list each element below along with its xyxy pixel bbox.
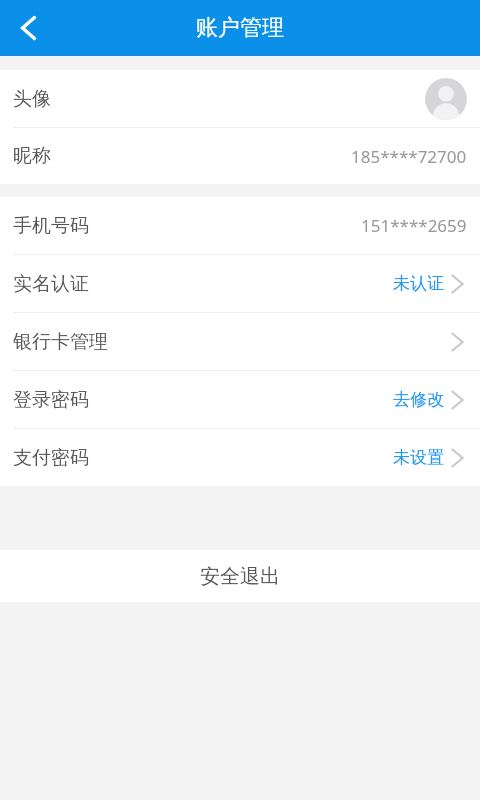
staticText: 151****2659 <box>361 214 467 237</box>
staticText: 账户管理 <box>196 14 284 42</box>
button[interactable]: 手机号码 <box>0 197 480 254</box>
button[interactable]: 实名认证 <box>0 255 480 312</box>
staticText: 手机号码 <box>13 214 89 238</box>
button[interactable]: 昵称 <box>0 128 480 184</box>
staticText: 安全退出 <box>200 564 280 589</box>
button[interactable]: 头像 <box>0 70 480 127</box>
staticText: 登录密码 <box>13 388 89 412</box>
staticText: 实名认证 <box>13 272 89 296</box>
staticText: 支付密码 <box>13 446 89 470</box>
staticText: 昵称 <box>13 144 51 168</box>
staticText: 未认证 <box>393 273 444 294</box>
staticText: 去修改 <box>393 389 444 410</box>
staticText: 银行卡管理 <box>13 330 108 354</box>
staticText: 头像 <box>13 87 51 111</box>
staticText: 未设置 <box>393 447 444 468</box>
button[interactable]: Back <box>8 8 48 48</box>
button[interactable]: 登录密码 <box>0 371 480 428</box>
button[interactable]: 安全退出 <box>0 550 480 602</box>
staticText: 185****72700 <box>351 145 467 168</box>
button[interactable]: 支付密码 <box>0 429 480 486</box>
button[interactable]: Avatar <box>425 78 467 120</box>
button[interactable]: 银行卡管理 <box>0 313 480 370</box>
